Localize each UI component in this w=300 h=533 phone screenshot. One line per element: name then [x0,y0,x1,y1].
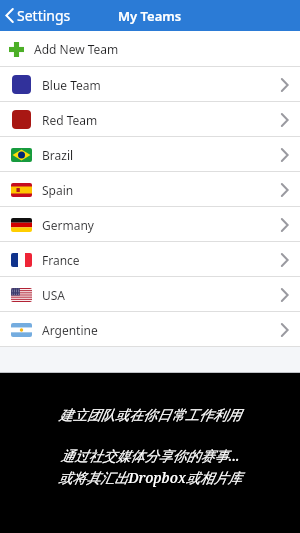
button[interactable]: Germany [0,207,300,242]
staticText: France [42,252,80,268]
staticText: My Teams [118,7,182,25]
staticText: Blue Team [42,77,101,93]
staticText: Red Team [42,112,98,128]
staticText: 建立团队或在你日常工作利用 [59,407,241,425]
staticText: Argentine [42,322,98,338]
button[interactable]: Argentine [0,312,300,347]
staticText: Brazil [42,147,74,163]
staticText: Add New Team [34,41,119,57]
button[interactable]: Red Team [0,102,300,137]
staticText: 通过社交媒体分享你的赛事... [60,446,240,465]
button[interactable]: France [0,242,300,277]
staticText: Settings [17,6,71,25]
button[interactable]: Add New Team [0,31,300,67]
button[interactable]: Blue Team [0,67,300,102]
button[interactable]: Spain [0,172,300,207]
button[interactable]: Settings [0,3,81,28]
staticText: Spain [42,182,74,198]
staticText: USA [42,287,66,303]
staticText: Germany [42,217,94,233]
staticText: 或将其汇出Dropbox或相片库 [58,468,242,487]
button[interactable]: Brazil [0,137,300,172]
button[interactable]: USA [0,277,300,312]
